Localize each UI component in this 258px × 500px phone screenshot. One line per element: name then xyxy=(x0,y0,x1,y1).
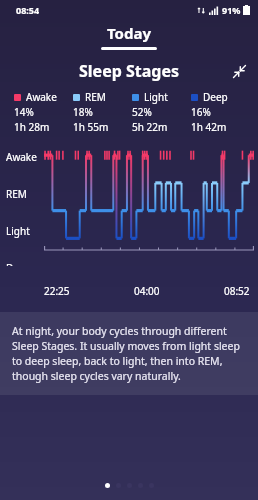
staticText: 22:25 xyxy=(44,284,70,298)
button[interactable]: REM xyxy=(73,90,132,134)
button[interactable]: Deep xyxy=(191,90,250,134)
staticText: 1h 28m xyxy=(14,120,50,134)
staticText: 1h 55m xyxy=(73,120,109,134)
staticText: Light xyxy=(6,224,30,238)
staticText: Awake xyxy=(26,90,57,104)
staticText: REM xyxy=(6,187,27,201)
button[interactable]: Light xyxy=(132,90,191,134)
staticText: 5h 22m xyxy=(132,120,168,134)
staticText: Light xyxy=(144,90,168,104)
button[interactable]: Today xyxy=(101,23,157,50)
staticText: Deep xyxy=(203,90,228,104)
button[interactable]: Page 1 xyxy=(105,483,110,488)
staticText: Awake xyxy=(6,150,37,164)
staticText: Deep xyxy=(6,261,31,266)
staticText: Today xyxy=(107,23,152,43)
staticText: 08:52 xyxy=(224,284,250,298)
staticText: 16% xyxy=(191,105,211,119)
staticText: 52% xyxy=(132,105,152,119)
staticText: 14% xyxy=(14,105,34,119)
staticText: 08:54 xyxy=(16,4,40,16)
button[interactable]: Collapse chart xyxy=(228,60,250,82)
staticText: 04:00 xyxy=(134,284,160,298)
staticText: Sleep Stages xyxy=(79,60,180,82)
staticText: 91% xyxy=(222,4,241,16)
staticText: At night, your body cycles through diffe… xyxy=(12,324,246,383)
staticText: REM xyxy=(85,90,106,104)
button[interactable]: Awake xyxy=(14,90,73,134)
staticText: 1h 42m xyxy=(191,120,227,134)
staticText: 18% xyxy=(73,105,93,119)
